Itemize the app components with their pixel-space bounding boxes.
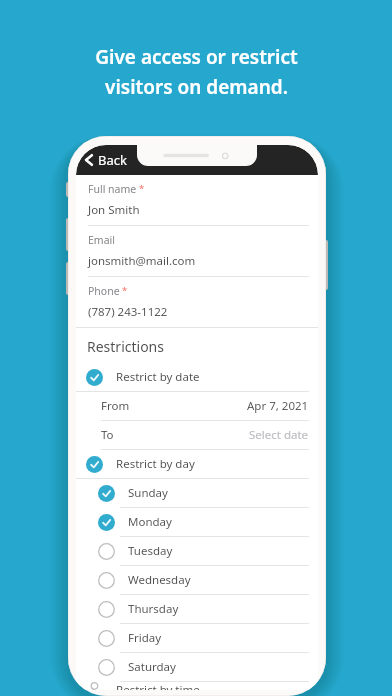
- button[interactable]: Back: [79, 148, 131, 172]
- button[interactable]: Sunday: [76, 479, 318, 508]
- staticText: From: [101, 398, 130, 414]
- staticText: Friday: [128, 630, 162, 646]
- other: Tuesday: [98, 543, 115, 560]
- other: Monday: [98, 514, 115, 531]
- other: Sunday: [98, 485, 115, 502]
- staticText: Phone: [88, 284, 120, 298]
- staticText: Select date: [249, 427, 309, 443]
- staticText: Restrict by time: [116, 682, 200, 690]
- button[interactable]: Friday: [76, 624, 318, 653]
- staticText: Restrict by day: [116, 456, 195, 472]
- button[interactable]: Restrict by date: [76, 363, 318, 392]
- staticText: Jon Smith: [88, 202, 140, 218]
- staticText: Restrict by date: [116, 369, 200, 385]
- button[interactable]: Restrict by day: [76, 450, 318, 479]
- staticText: Email: [88, 233, 115, 247]
- button[interactable]: Email: [76, 226, 318, 277]
- button[interactable]: Thursday: [76, 595, 318, 624]
- button[interactable]: Full name: [76, 175, 318, 226]
- button[interactable]: To: [76, 421, 318, 450]
- other: Friday: [98, 630, 115, 647]
- button[interactable]: Phone: [76, 277, 318, 328]
- staticText: Saturday: [128, 659, 176, 675]
- button[interactable]: Saturday: [76, 653, 318, 682]
- other: Thursday: [98, 601, 115, 618]
- staticText: Back: [98, 151, 127, 169]
- button[interactable]: From: [76, 392, 318, 421]
- button[interactable]: Restrict by time: [76, 682, 318, 690]
- staticText: Monday: [128, 514, 172, 530]
- button[interactable]: Monday: [76, 508, 318, 537]
- staticText: Full name: [88, 182, 137, 196]
- staticText: visitors on demand.: [105, 74, 288, 100]
- other: Restrict by time: [86, 682, 103, 690]
- button[interactable]: Wednesday: [76, 566, 318, 595]
- staticText: Thursday: [128, 601, 179, 617]
- staticText: Give access or restrict: [95, 44, 298, 70]
- other: Saturday: [98, 659, 115, 676]
- button[interactable]: Tuesday: [76, 537, 318, 566]
- staticText: Wednesday: [128, 572, 191, 588]
- staticText: (787) 243-1122: [88, 304, 168, 320]
- staticText: To: [101, 427, 114, 443]
- staticText: *: [139, 182, 145, 195]
- staticText: jonsmith@mail.com: [88, 253, 196, 269]
- other: Restrict by date: [86, 369, 103, 386]
- other: Restrict by day: [86, 456, 103, 473]
- staticText: Tuesday: [128, 543, 173, 559]
- staticText: *: [122, 284, 128, 297]
- staticText: Apr 7, 2021: [247, 398, 309, 414]
- staticText: Sunday: [128, 485, 168, 501]
- staticText: Restrictions: [87, 337, 164, 356]
- other: Wednesday: [98, 572, 115, 589]
